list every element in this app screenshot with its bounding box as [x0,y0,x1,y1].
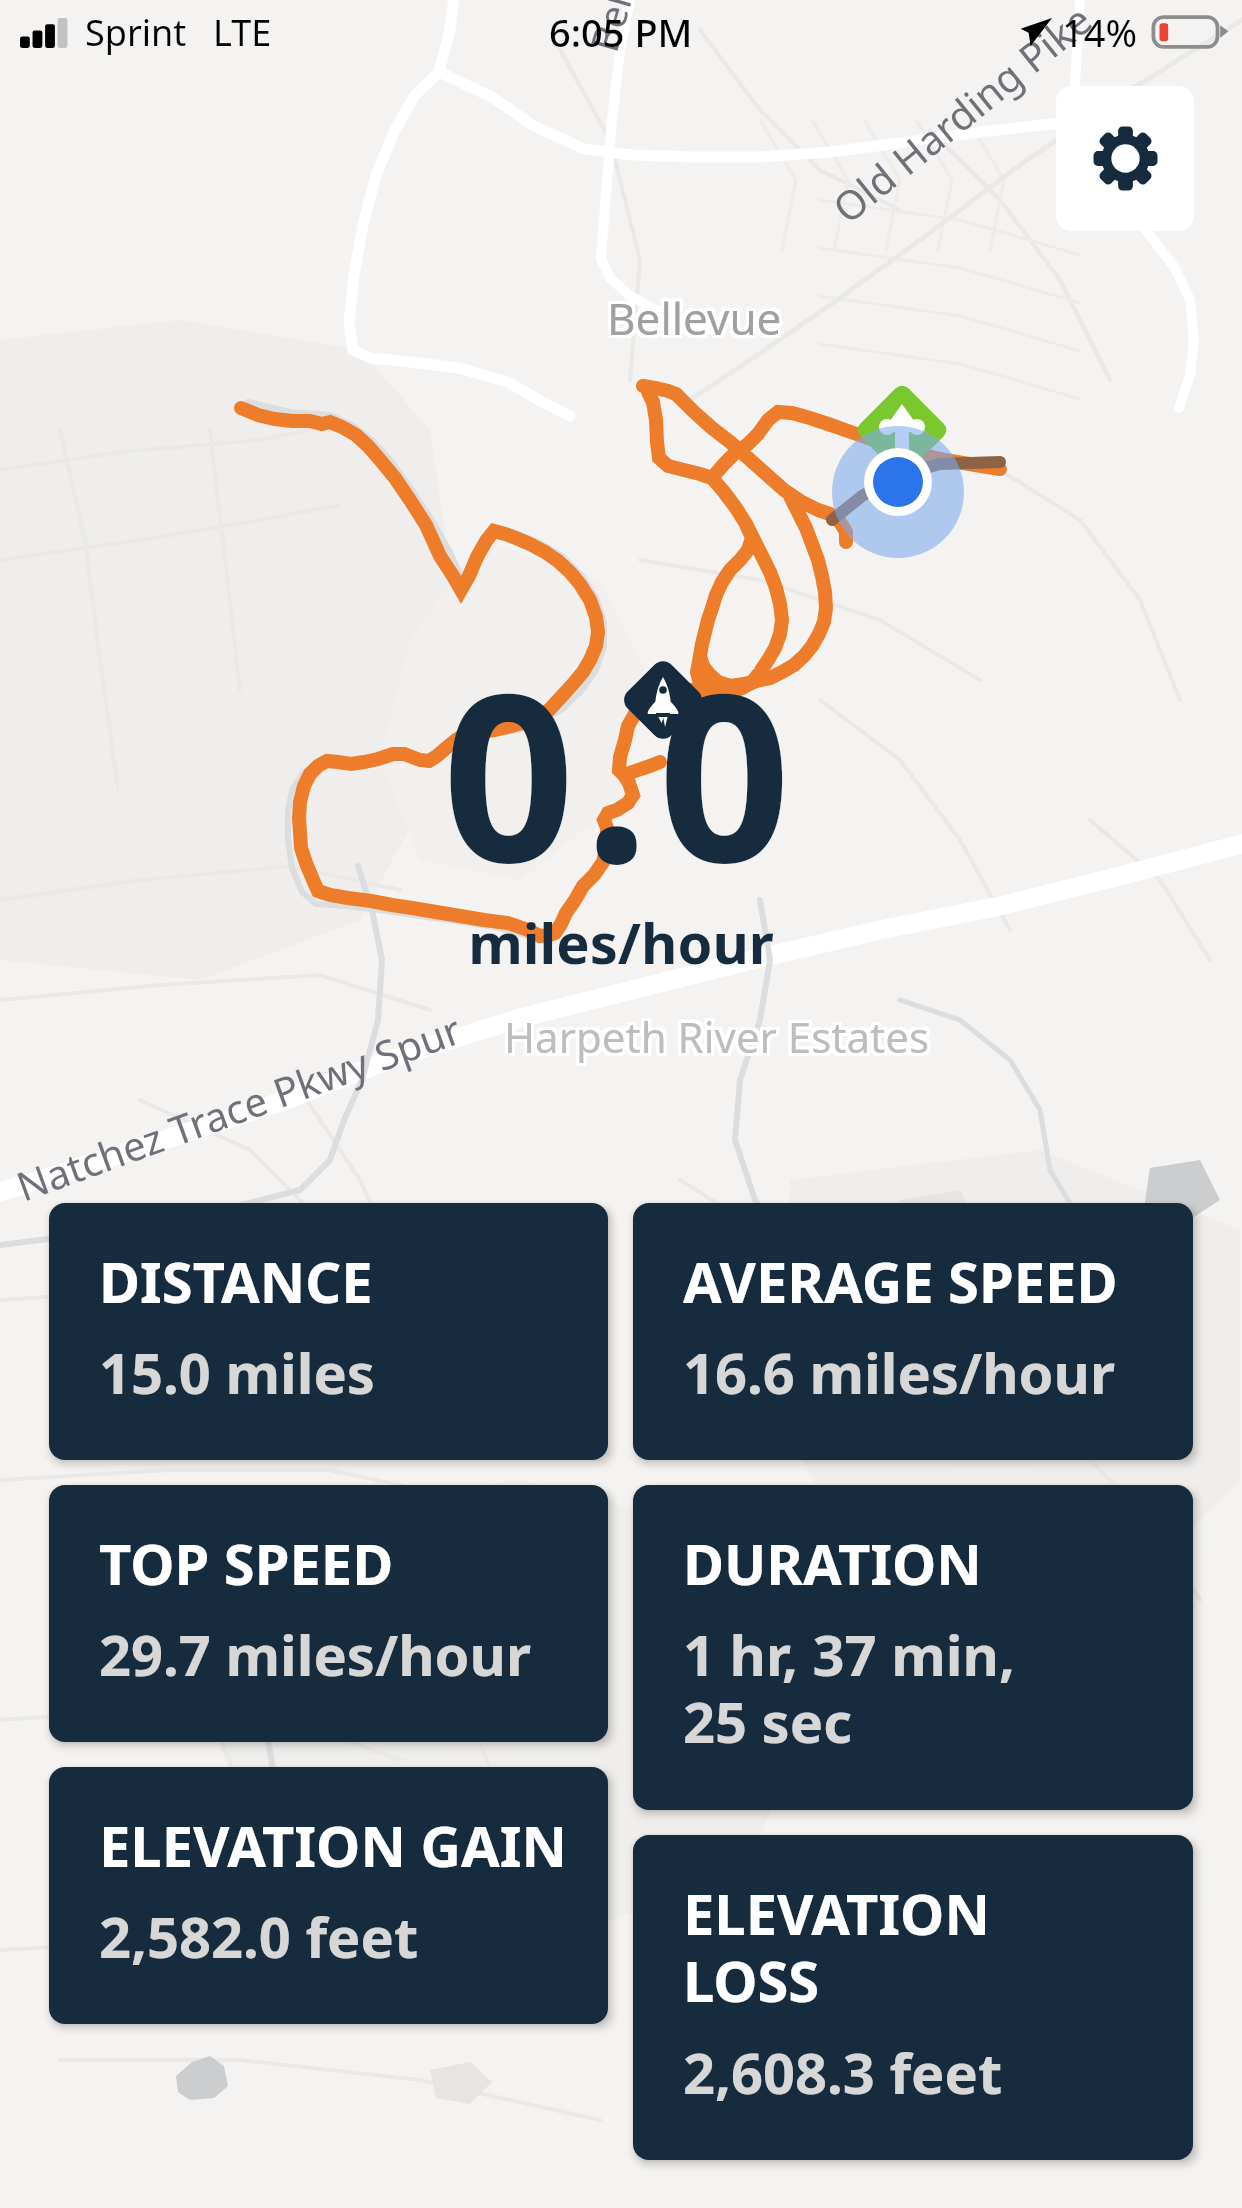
button[interactable]: ELEVATION GAIN [49,1767,608,2024]
staticText: Harpeth River Estates [504,1008,929,1065]
staticText: Harpeth River Estates [501,1008,926,1065]
staticText: LTE [213,8,272,57]
staticText: DISTANCE [99,1243,373,1319]
button[interactable]: AVERAGE SPEED [633,1203,1193,1460]
button[interactable]: DISTANCE [49,1203,608,1460]
staticText: Bellevue [607,291,782,351]
staticText: 14% [1062,6,1138,58]
staticText: 2,608.3 feet [683,2034,1003,2110]
staticText: Bellevue [604,285,779,345]
staticText: Bellevue [604,288,779,348]
staticText: 16.6 miles/hour [683,1334,1116,1410]
staticText: Bellevue [610,288,785,348]
staticText: Bellevue [610,291,785,351]
staticText: Bellevue [607,288,782,348]
button[interactable]: Settings [1056,86,1194,231]
staticText: 6:05 PM [549,6,693,58]
staticText: ELEVATION LOSS [683,1875,990,2019]
staticText: miles/hour [468,904,774,980]
staticText: TOP SPEED [99,1525,394,1601]
staticText: Bellevue [607,285,782,345]
staticText: Harpeth River Estates [504,1005,929,1062]
staticText: Harpeth River Estates [501,1005,926,1062]
staticText: Bellevue [604,291,779,351]
staticText: 0.0 [442,614,800,930]
staticText: 15.0 miles [99,1334,375,1410]
staticText: Harpeth River Estates [504,1011,929,1068]
staticText: Harpeth River Estates [507,1008,932,1065]
staticText: Harpeth River Estates [501,1011,926,1068]
staticText: ELEVATION GAIN [99,1807,568,1883]
staticText: Sprint [85,8,187,57]
staticText: Bellevue [610,285,785,345]
staticText: 2,582.0 feet [99,1898,419,1974]
staticText: Bellevue R [577,0,678,57]
staticText: Old Harding Pike [821,0,1102,234]
staticText: 1 hr, 37 min, 25 sec [683,1616,1015,1760]
staticText: AVERAGE SPEED [683,1243,1118,1319]
staticText: 29.7 miles/hour [99,1616,532,1692]
staticText: Harpeth River Estates [507,1011,932,1068]
staticText: Natchez Trace Pkwy Spur [9,1001,468,1212]
button[interactable]: TOP SPEED [49,1485,608,1742]
staticText: DURATION [683,1525,982,1601]
button[interactable]: ELEVATION LOSS [633,1835,1193,2160]
staticText: Harpeth River Estates [507,1005,932,1062]
button[interactable]: DURATION [633,1485,1193,1810]
